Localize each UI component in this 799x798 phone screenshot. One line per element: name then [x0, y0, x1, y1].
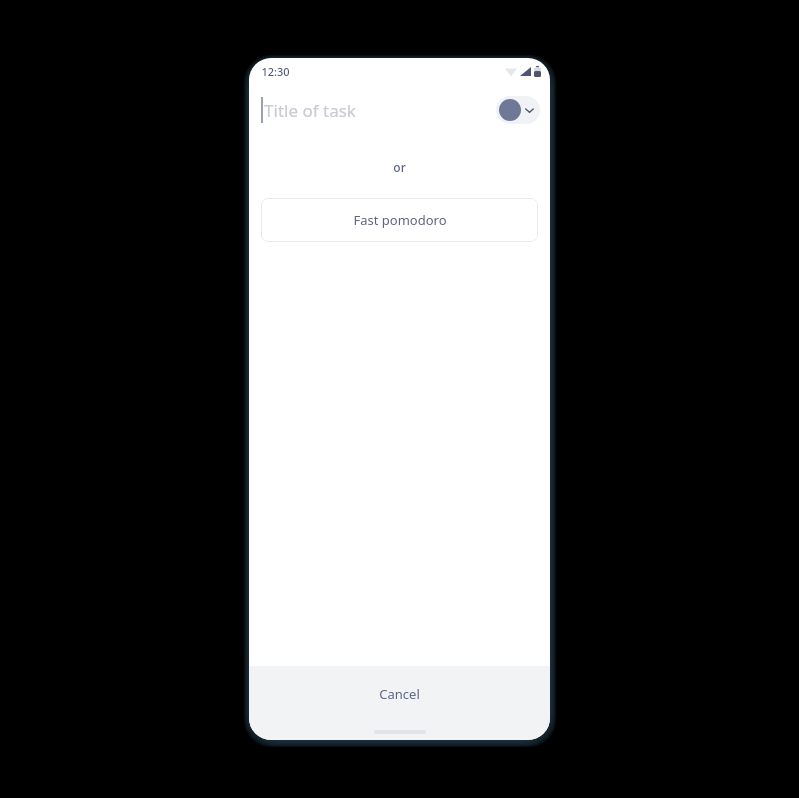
staticText: Fast pomodoro: [353, 211, 447, 229]
button[interactable]: Title of task: [261, 84, 496, 136]
button[interactable]: Fast pomodoro: [261, 198, 538, 242]
staticText: Title of task: [264, 99, 356, 122]
staticText: Cancel: [379, 685, 420, 703]
staticText: or: [393, 159, 406, 175]
staticText: 12:30: [261, 64, 290, 79]
button[interactable]: Cancel: [249, 666, 550, 722]
button[interactable]: Select assignee: [496, 96, 540, 124]
